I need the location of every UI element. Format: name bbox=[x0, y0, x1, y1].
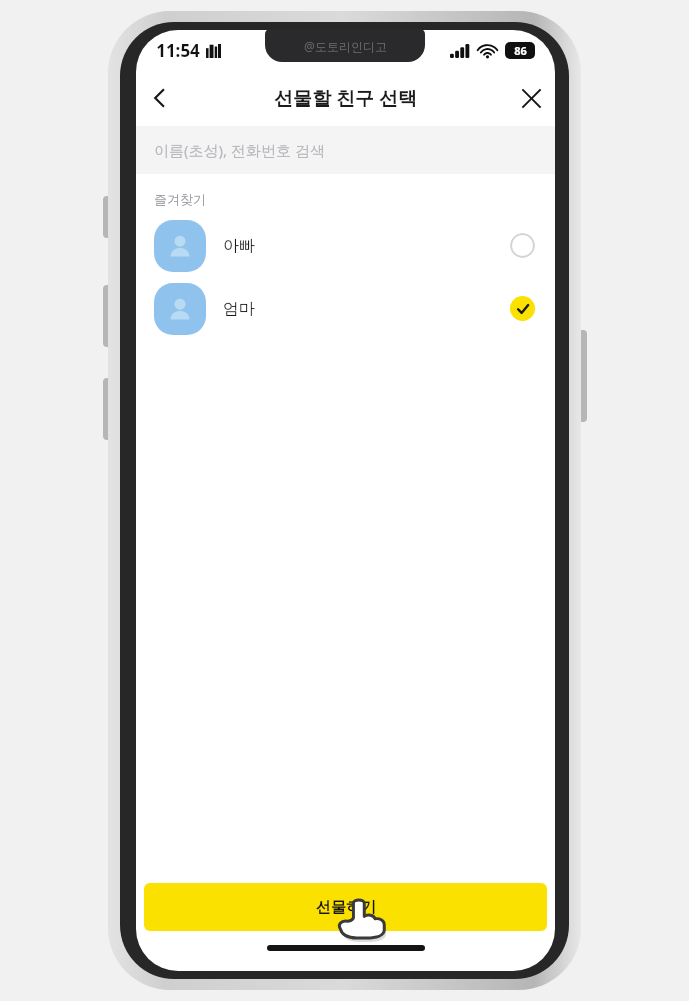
button[interactable]: Not selected bbox=[510, 233, 535, 258]
staticText: @도토리인디고 bbox=[304, 38, 387, 54]
button[interactable]: 선물하기 bbox=[144, 883, 547, 931]
button[interactable]: 아빠 bbox=[136, 214, 555, 277]
staticText: 이름(초성), 전화번호 검색 bbox=[154, 140, 325, 160]
button[interactable]: 이름(초성), 전화번호 검색 bbox=[136, 126, 555, 174]
staticText: 86 bbox=[514, 43, 527, 58]
staticText: 엄마 bbox=[223, 299, 255, 319]
staticText: 아빠 bbox=[223, 236, 255, 256]
staticText: 선물할 친구 선택 bbox=[274, 85, 417, 111]
staticText: 선물하기 bbox=[316, 898, 376, 917]
staticText: 11:54 bbox=[156, 39, 200, 62]
button[interactable]: 엄마 bbox=[136, 277, 555, 340]
button[interactable]: Back bbox=[136, 74, 184, 122]
staticText: 즐겨찾기 bbox=[154, 191, 206, 207]
button[interactable]: Selected bbox=[510, 296, 535, 321]
button[interactable]: Close bbox=[507, 74, 555, 122]
